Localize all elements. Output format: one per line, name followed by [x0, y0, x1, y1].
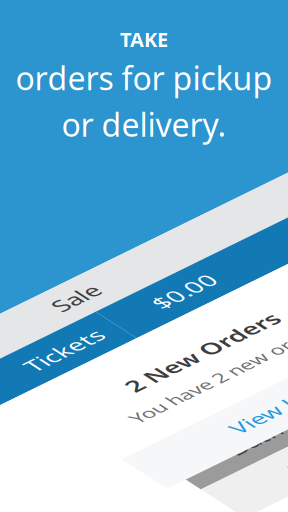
staticText: orders for pickup [15, 57, 272, 99]
staticText: TAKE [120, 26, 168, 53]
staticText: or delivery. [61, 103, 226, 146]
